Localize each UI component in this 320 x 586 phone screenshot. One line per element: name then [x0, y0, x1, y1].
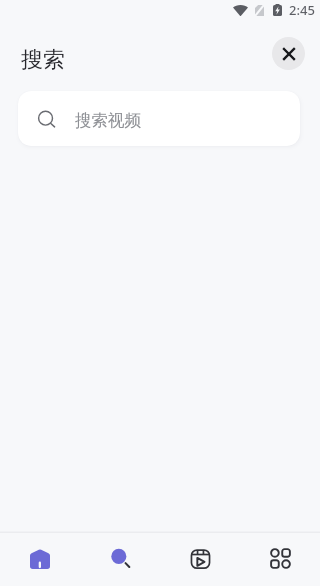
- staticText: 2:45: [289, 1, 315, 19]
- button[interactable]: More: [240, 533, 320, 586]
- button[interactable]: 搜索视频: [18, 91, 300, 146]
- staticText: 搜索: [21, 46, 65, 74]
- button[interactable]: Search: [80, 533, 160, 586]
- button[interactable]: Home: [0, 533, 80, 586]
- button[interactable]: Videos: [160, 533, 240, 586]
- button[interactable]: Close: [272, 37, 305, 70]
- staticText: 搜索视频: [75, 110, 141, 131]
